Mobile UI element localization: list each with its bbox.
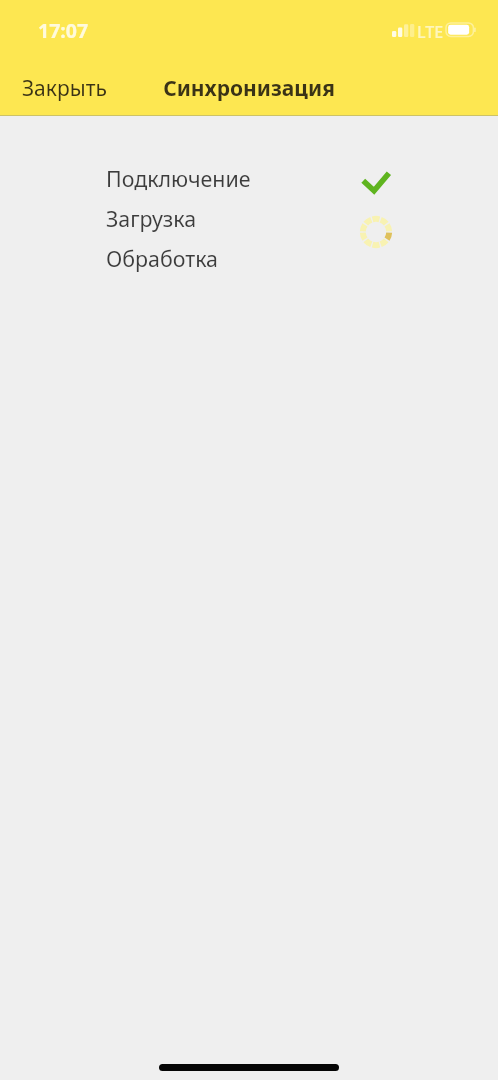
- other: Выполнено: [362, 172, 390, 192]
- button[interactable]: Обработка: [0, 238, 498, 278]
- staticText: Загрузка: [106, 204, 197, 233]
- staticText: Подключение: [106, 164, 251, 193]
- button[interactable]: Загрузка: [0, 198, 498, 238]
- other: Загрузка: [359, 215, 393, 249]
- staticText: Обработка: [106, 244, 218, 273]
- button[interactable]: Закрыть: [10, 66, 119, 111]
- staticText: 17:07: [38, 17, 89, 44]
- staticText: LTE: [417, 21, 444, 43]
- button[interactable]: Подключение: [0, 158, 498, 198]
- staticText: Закрыть: [22, 74, 107, 103]
- staticText: Синхронизация: [163, 74, 335, 103]
